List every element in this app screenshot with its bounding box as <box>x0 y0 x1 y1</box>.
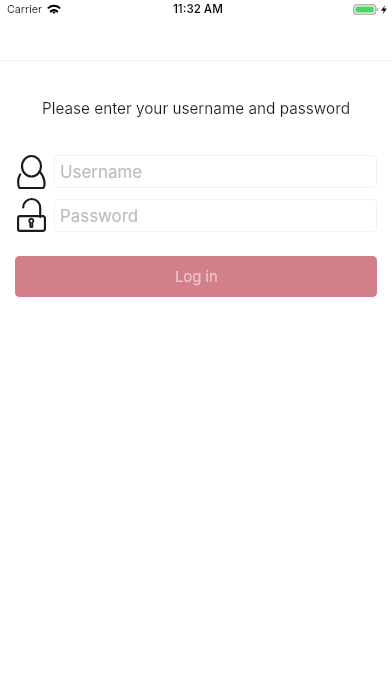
staticText: Please enter your username and password <box>0 99 392 117</box>
other: Wi-Fi <box>44 0 64 20</box>
staticText: Carrier <box>7 3 43 16</box>
button[interactable]: Log in <box>15 256 377 297</box>
other: Username <box>17 155 46 188</box>
staticText: 11:32 AM <box>173 2 223 16</box>
staticText: Username <box>60 162 143 182</box>
staticText: Log in <box>175 268 218 286</box>
staticText: Password <box>60 206 139 226</box>
button[interactable]: Password <box>54 199 377 232</box>
other: Password <box>17 199 46 232</box>
button[interactable]: Username <box>54 155 377 188</box>
other: Charging <box>380 4 388 16</box>
